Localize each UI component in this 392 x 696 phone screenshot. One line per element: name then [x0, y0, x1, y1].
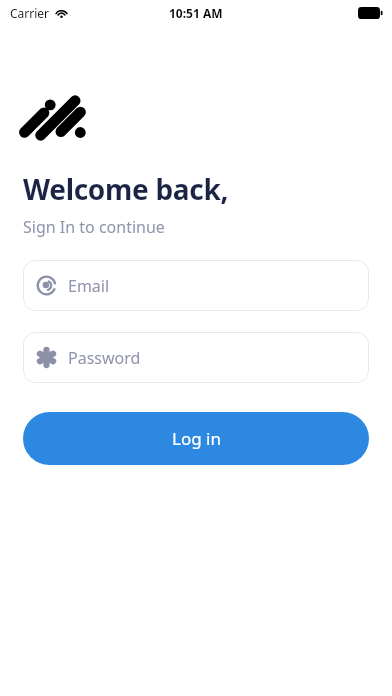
- staticText: Log in: [172, 427, 221, 450]
- button[interactable]: Password: [23, 332, 369, 383]
- staticText: Password: [68, 347, 141, 369]
- staticText: Sign In to continue: [23, 216, 165, 238]
- button[interactable]: Email: [23, 260, 369, 311]
- staticText: Carrier: [10, 5, 50, 21]
- staticText: Welcome back,: [23, 170, 229, 208]
- button[interactable]: Log in: [23, 412, 369, 465]
- staticText: Email: [68, 275, 110, 297]
- staticText: 10:51 AM: [169, 5, 223, 21]
